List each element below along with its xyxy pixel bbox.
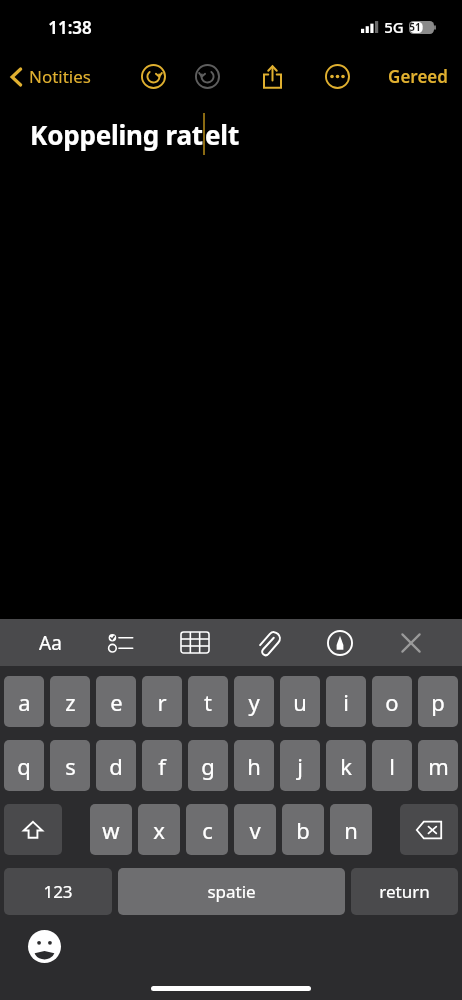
staticText: s [65,751,76,781]
staticText: j [297,751,303,781]
staticText: a [18,687,31,717]
staticText: o [385,687,399,717]
button[interactable]: v [234,804,276,855]
button[interactable]: n [330,804,372,855]
staticText: 123 [43,880,73,903]
staticText: Gereed [388,65,448,88]
staticText: y [248,687,260,717]
staticText: d [109,751,123,781]
button[interactable]: s [50,740,90,791]
button[interactable]: g [188,740,228,791]
staticText: k [340,751,352,781]
button[interactable]: i [326,676,366,727]
button[interactable]: d [96,740,136,791]
button[interactable]: Undo [135,58,172,95]
staticText: e [110,687,123,717]
button[interactable]: More options [319,58,356,95]
staticText: 5G [384,17,404,37]
button[interactable]: l [372,740,412,791]
button[interactable]: z [50,676,90,727]
button[interactable]: u [280,676,320,727]
staticText: Notities [29,65,91,88]
button[interactable]: Checklist [100,625,142,661]
button[interactable]: e [96,676,136,727]
staticText: c [202,815,213,845]
button[interactable]: c [186,804,228,855]
button[interactable]: r [142,676,182,727]
staticText: q [17,751,31,781]
staticText: u [293,687,307,717]
button[interactable]: m [418,740,458,791]
staticText: t [204,687,212,717]
staticText: m [428,751,449,781]
button[interactable]: a [4,676,44,727]
button[interactable]: o [372,676,412,727]
button[interactable]: q [4,740,44,791]
staticText: h [247,751,261,781]
button[interactable]: k [326,740,366,791]
button[interactable]: p [418,676,458,727]
button[interactable]: Backspace [400,804,458,855]
staticText: elt [205,117,239,152]
staticText: l [389,751,395,781]
button[interactable]: spatie [118,868,345,915]
button[interactable]: Attach [248,622,288,664]
staticText: p [431,687,445,717]
button[interactable]: Table [173,624,217,661]
staticText: Aa [39,630,62,656]
button[interactable]: Shift [4,804,62,855]
staticText: 11:38 [48,16,92,39]
button[interactable]: b [282,804,324,855]
staticText: z [65,687,76,717]
staticText: return [379,880,430,903]
staticText: n [344,815,358,845]
button[interactable]: Gereed [378,59,462,94]
button[interactable]: y [234,676,274,727]
staticText: f [158,751,166,781]
button[interactable]: h [234,740,274,791]
button[interactable]: Notities [0,59,99,94]
button[interactable]: x [138,804,180,855]
button[interactable]: 123 [4,868,112,915]
staticText: b [296,815,310,845]
button[interactable]: Share [254,58,291,95]
staticText: Koppeling rat [30,117,203,152]
button[interactable]: Emoji [28,930,61,963]
staticText: w [102,815,120,845]
button[interactable]: Format [31,622,70,664]
button[interactable]: w [90,804,132,855]
button[interactable]: return [351,868,458,915]
staticText: x [153,815,165,845]
staticText: v [249,815,261,845]
staticText: spatie [207,880,256,903]
button[interactable]: Redo [189,58,226,95]
staticText: g [201,751,215,781]
button[interactable]: j [280,740,320,791]
button[interactable]: Close keyboard [391,623,431,663]
button[interactable]: t [188,676,228,727]
staticText: r [157,687,167,717]
staticText: i [343,687,349,717]
button[interactable]: f [142,740,182,791]
button[interactable]: Markup [319,622,361,664]
staticText: 51 [409,20,421,34]
